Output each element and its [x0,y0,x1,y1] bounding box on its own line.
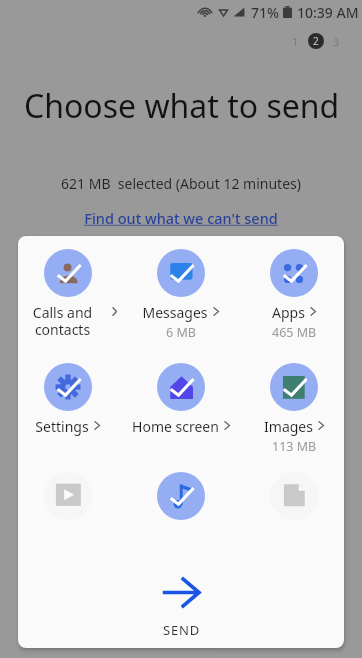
button[interactable]: Audio [131,472,231,520]
button[interactable]: Settings [18,363,118,436]
button[interactable]: Documents [244,472,344,520]
staticText: 2 [313,34,319,48]
staticText: 1 [292,34,299,49]
staticText: 113 MB [272,438,317,455]
staticText: 3 [333,34,340,49]
button[interactable]: SEND [18,576,344,639]
staticText: Choose what to send [24,84,340,128]
staticText: 6 MB [166,324,196,341]
staticText: Images [264,417,313,436]
staticText: Find out what we can't send [84,208,278,228]
staticText: Calls and contacts [18,303,107,339]
staticText: 465 MB [272,324,317,341]
staticText: 621 MB selected (About 12 minutes) [0,174,362,193]
staticText: SEND [163,621,200,639]
staticText: Messages [142,303,208,322]
button[interactable]: Messages [131,249,231,341]
staticText: 10:39 AM [297,3,359,22]
button[interactable]: Images [244,363,344,455]
button[interactable]: Apps [244,249,344,341]
staticText: Settings [35,417,89,436]
button[interactable]: Find out what we can't send [0,208,362,228]
staticText: 71% [251,3,279,22]
button[interactable]: Calls and contacts [18,249,118,339]
staticText: Home screen [132,417,219,436]
button[interactable]: Videos [18,472,118,520]
button[interactable]: Home screen [131,363,231,436]
staticText: Apps [272,303,305,322]
